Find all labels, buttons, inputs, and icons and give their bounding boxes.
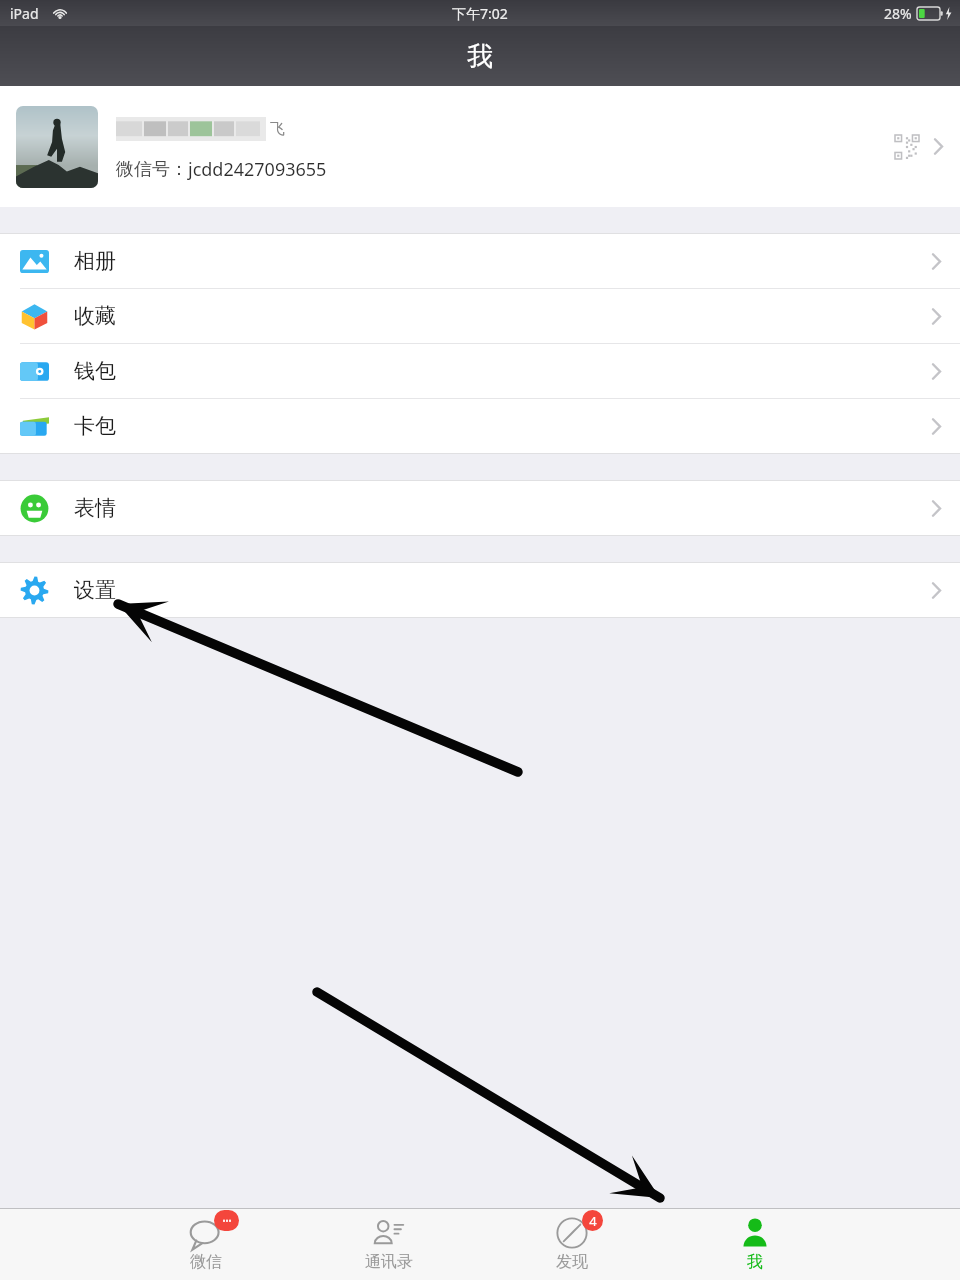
- staticText: 相册: [74, 248, 116, 274]
- button[interactable]: 通讯录: [297, 1209, 480, 1280]
- button[interactable]: 设置: [0, 563, 960, 617]
- staticText: 通讯录: [365, 1252, 413, 1272]
- staticText: 发现: [556, 1252, 588, 1272]
- staticText: 4: [589, 1212, 597, 1230]
- button[interactable]: 相册: [0, 234, 960, 288]
- button[interactable]: 卡包: [0, 399, 960, 453]
- staticText: 微信: [190, 1252, 222, 1272]
- staticText: 微信号：: [116, 158, 188, 181]
- staticText: 钱包: [74, 358, 116, 384]
- staticText: 下午7:02: [452, 4, 508, 23]
- staticText: 卡包: [74, 413, 116, 439]
- button[interactable]: 飞: [0, 86, 960, 207]
- staticText: 飞: [270, 120, 285, 139]
- button[interactable]: •••: [114, 1209, 297, 1280]
- staticText: 28%: [884, 4, 912, 23]
- staticText: iPad: [10, 4, 39, 23]
- button[interactable]: 4: [480, 1209, 663, 1280]
- staticText: jcdd2427093655: [188, 157, 327, 182]
- button[interactable]: 我: [663, 1209, 846, 1280]
- button[interactable]: 收藏: [0, 289, 960, 343]
- staticText: •••: [222, 1215, 232, 1226]
- staticText: 设置: [74, 577, 116, 603]
- button[interactable]: 钱包: [0, 344, 960, 398]
- staticText: 表情: [74, 495, 116, 521]
- button[interactable]: 表情: [0, 481, 960, 535]
- staticText: 收藏: [74, 303, 116, 329]
- other: My QR code: [895, 135, 919, 159]
- staticText: 我: [747, 1252, 763, 1272]
- staticText: 我: [467, 40, 493, 73]
